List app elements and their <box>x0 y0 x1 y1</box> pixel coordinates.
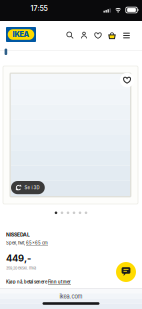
staticText: IKEA <box>12 30 29 39</box>
staticText: 17:55 <box>30 4 47 13</box>
button[interactable]: Shopping bag <box>105 28 119 42</box>
staticText: ikea.com <box>59 293 82 300</box>
button[interactable]: IKEA home <box>2 23 39 45</box>
button[interactable]: Favourites <box>91 28 105 42</box>
staticText: 359,20 ekskl. mva <box>6 266 36 270</box>
button[interactable]: Se i 3D <box>11 181 45 194</box>
button[interactable]: Save to favourites <box>120 73 134 87</box>
button[interactable]: ikea.com <box>0 291 142 302</box>
button[interactable]: Search <box>63 28 77 42</box>
staticText: Kjøp nå, betal senere Finn ut mer <box>6 279 71 284</box>
staticText: 449,- <box>6 252 31 264</box>
staticText: NISSEDAL <box>6 231 30 238</box>
staticText: Se i 3D <box>25 185 40 190</box>
button[interactable]: Chat with us <box>116 262 136 282</box>
button[interactable]: Account <box>77 28 91 42</box>
button[interactable]: Menu <box>119 28 134 43</box>
staticText: Speil, hvit, 65x65 cm <box>6 240 48 245</box>
